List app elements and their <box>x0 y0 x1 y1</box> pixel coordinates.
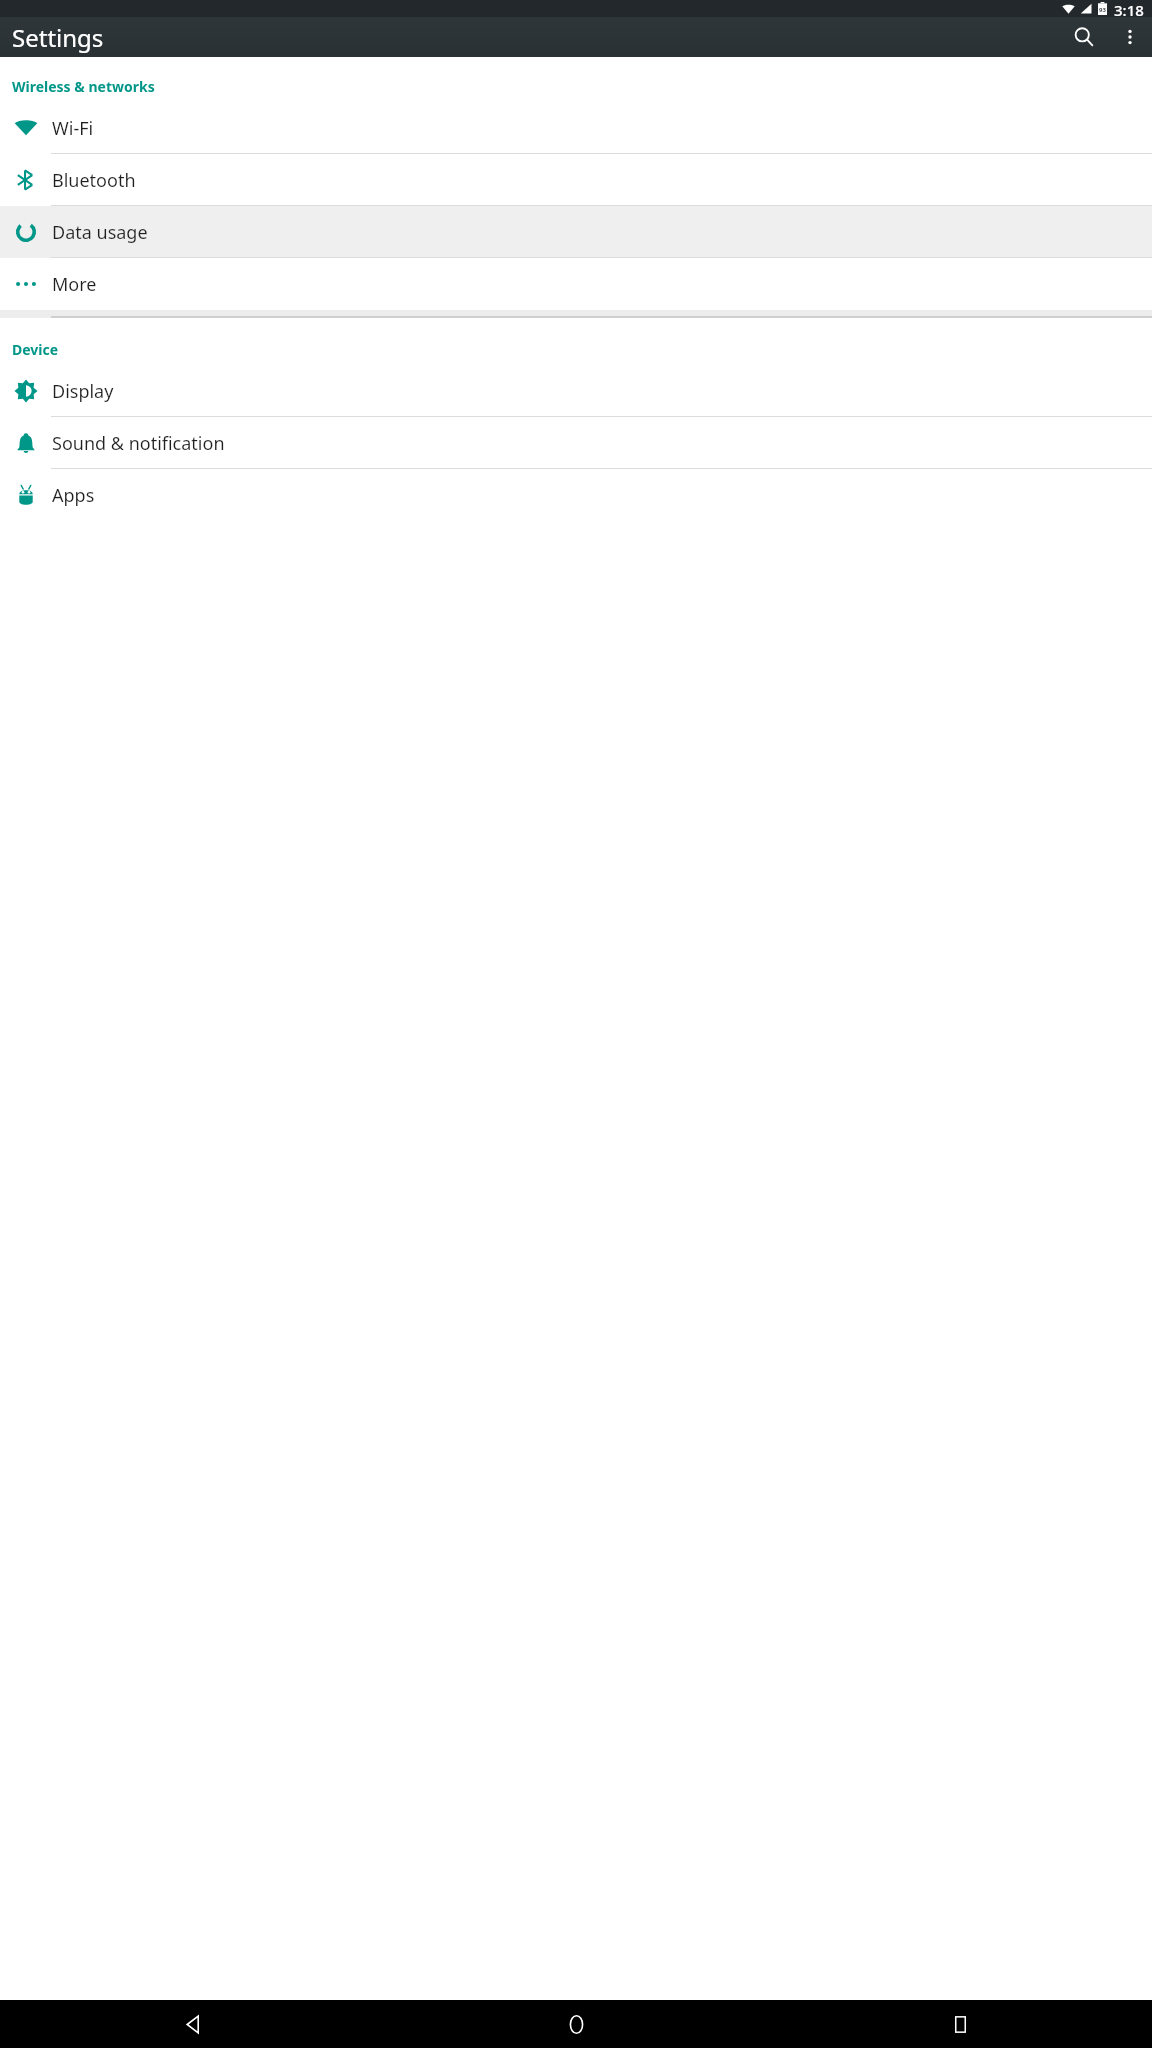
button[interactable]: Back <box>0 2000 384 2048</box>
staticText: Display <box>52 379 114 404</box>
button[interactable]: More <box>0 258 1152 310</box>
button[interactable]: Apps <box>0 469 1152 521</box>
button[interactable]: Data usage <box>0 206 1152 258</box>
staticText: Apps <box>52 483 95 508</box>
button[interactable]: Recent apps <box>768 2000 1152 2048</box>
staticText: Wireless & networks <box>12 77 155 96</box>
staticText: Settings <box>12 21 104 54</box>
staticText: Wi-Fi <box>52 116 94 141</box>
button[interactable]: Sound & notification <box>0 417 1152 469</box>
staticText: Sound & notification <box>52 431 225 456</box>
staticText: Data usage <box>52 220 148 245</box>
staticText: More <box>52 272 97 297</box>
staticText: Device <box>12 340 59 359</box>
staticText: 93 <box>1099 6 1106 14</box>
button[interactable]: More options <box>1108 17 1152 57</box>
button[interactable]: Display <box>0 365 1152 417</box>
button[interactable]: Wi-Fi <box>0 102 1152 154</box>
staticText: 3:18 <box>1114 0 1144 17</box>
staticText: Bluetooth <box>52 168 136 193</box>
button[interactable]: Search <box>1060 17 1108 57</box>
button[interactable]: Bluetooth <box>0 154 1152 206</box>
button[interactable]: Home <box>384 2000 768 2048</box>
